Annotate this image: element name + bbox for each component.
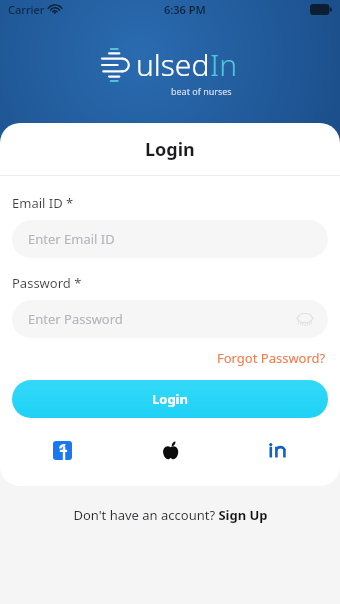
- button[interactable]: Sign in with LinkedIn: [228, 432, 328, 468]
- button[interactable]: Enter Email ID: [12, 220, 328, 258]
- staticText: Forgot Password?: [217, 349, 326, 367]
- staticText: Password *: [12, 274, 82, 292]
- staticText: In: [210, 44, 238, 85]
- staticText: Login: [152, 390, 188, 408]
- staticText: beat of nurses: [171, 85, 232, 97]
- staticText: Enter Password: [28, 310, 123, 328]
- button[interactable]: Don't have an account? Sign Up: [69, 502, 272, 528]
- staticText: Enter Email ID: [28, 230, 115, 248]
- button[interactable]: Login: [12, 380, 328, 418]
- button[interactable]: Forgot Password?: [215, 347, 328, 369]
- staticText: ulsed: [136, 44, 210, 85]
- button[interactable]: Enter Password: [12, 300, 328, 338]
- staticText: Carrier: [8, 2, 45, 17]
- button[interactable]: Sign in with Apple: [120, 432, 220, 468]
- button[interactable]: Sign in with Facebook: [12, 432, 112, 468]
- staticText: Email ID *: [12, 194, 74, 212]
- staticText: 6:36 PM: [164, 2, 206, 17]
- button[interactable]: Show password: [294, 308, 316, 330]
- staticText: Login: [145, 137, 195, 162]
- staticText: Don't have an account? Sign Up: [73, 506, 268, 524]
